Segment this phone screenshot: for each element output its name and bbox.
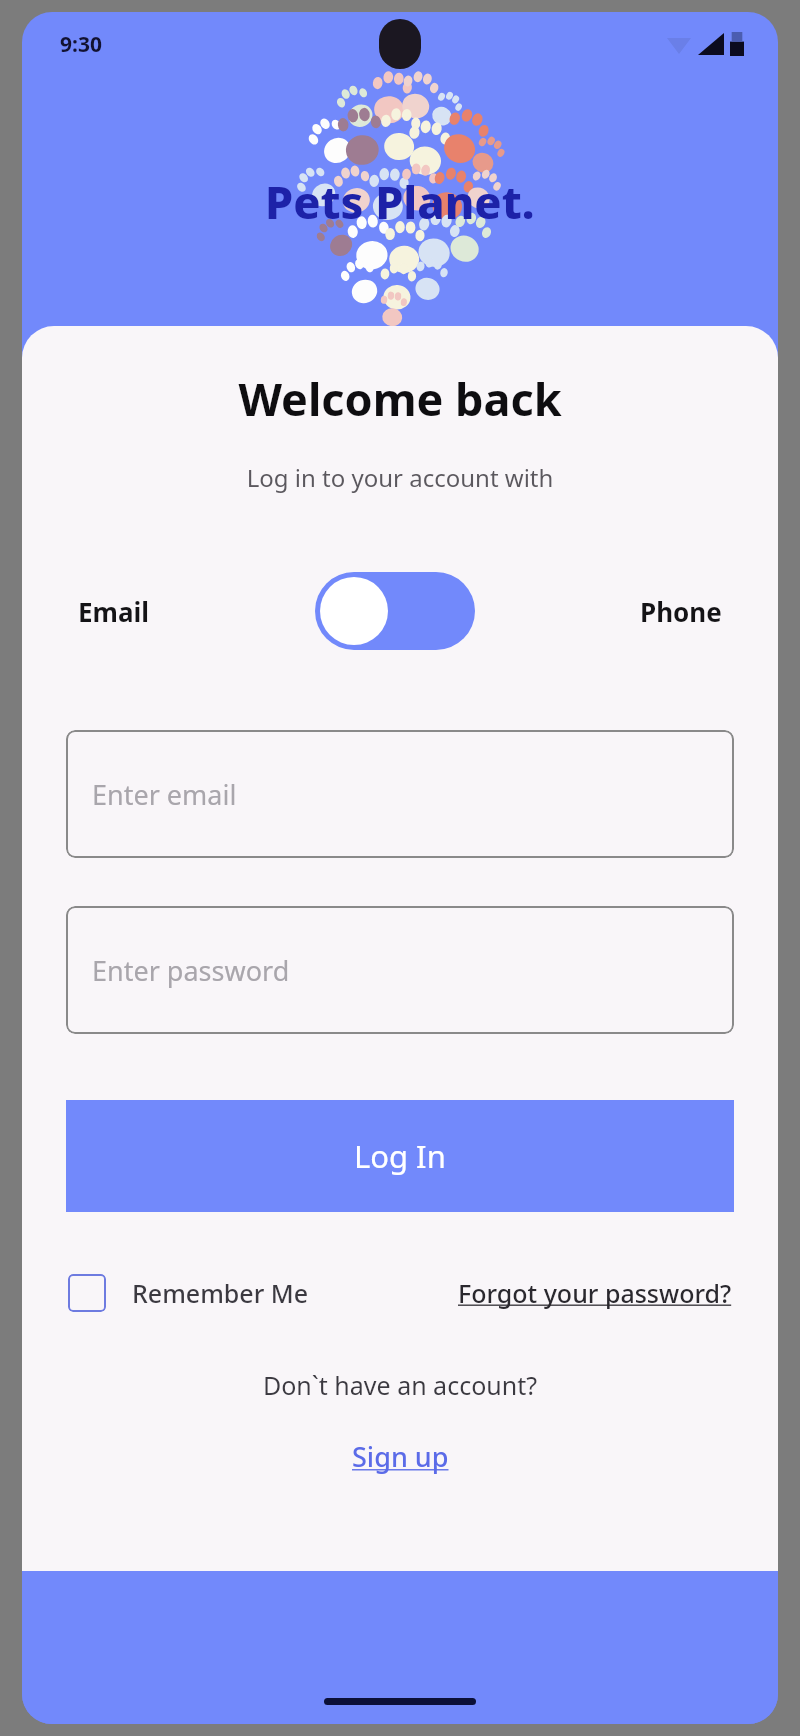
button[interactable]: Remember Me: [68, 1274, 309, 1312]
staticText: Email: [78, 594, 150, 629]
staticText: Log In: [354, 1135, 446, 1177]
staticText: Phone: [640, 594, 722, 629]
button[interactable]: Enter email: [66, 730, 734, 858]
button[interactable]: Switch login method: [315, 572, 475, 650]
staticText: Log in to your account with: [22, 461, 778, 494]
staticText: 9:30: [60, 30, 102, 59]
button[interactable]: Forgot your password?: [458, 1276, 732, 1310]
staticText: Enter email: [92, 776, 237, 813]
staticText: Pets Planet.: [265, 171, 535, 232]
staticText: Don`t have an account?: [22, 1368, 778, 1402]
staticText: Welcome back: [22, 368, 778, 429]
staticText: Remember Me: [132, 1276, 309, 1310]
button[interactable]: Enter password: [66, 906, 734, 1034]
button[interactable]: Sign up: [346, 1436, 455, 1477]
button[interactable]: Log In: [66, 1100, 734, 1212]
staticText: Enter password: [92, 952, 290, 989]
